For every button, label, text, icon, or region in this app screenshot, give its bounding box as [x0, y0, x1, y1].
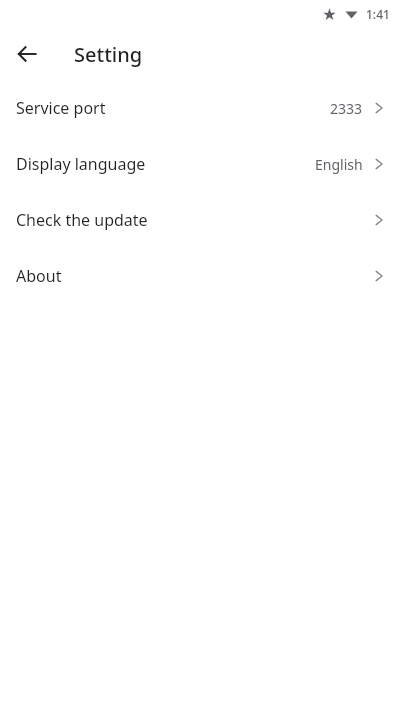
staticText: 1:41 — [366, 6, 390, 22]
button[interactable]: Display language — [0, 136, 400, 192]
button[interactable]: Back — [11, 38, 43, 70]
staticText: 2333 — [330, 99, 363, 118]
staticText: Check the update — [16, 209, 148, 231]
button[interactable]: Check the update — [0, 192, 400, 248]
staticText: About — [16, 265, 62, 287]
staticText: English — [315, 155, 363, 174]
button[interactable]: About — [0, 248, 400, 304]
button[interactable]: Service port — [0, 80, 400, 136]
staticText: Service port — [16, 97, 106, 119]
staticText: Display language — [16, 153, 146, 175]
staticText: Setting — [74, 41, 143, 68]
